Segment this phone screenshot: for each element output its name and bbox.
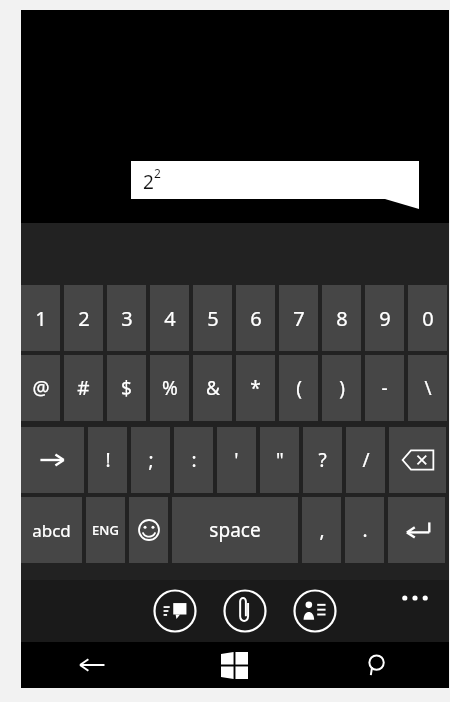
staticText: & [206,375,220,401]
staticText: 5 [207,305,219,332]
staticText: 1 [35,305,47,332]
staticText: " [276,447,284,473]
button[interactable]: , [302,497,341,563]
staticText: * [250,375,261,401]
button[interactable]: 3 [107,285,146,351]
staticText: 8 [336,305,348,332]
staticText: : [191,447,197,473]
button[interactable]: Emoji [129,497,168,563]
button[interactable]: ENG [86,497,125,563]
button[interactable]: ! [88,427,127,493]
button[interactable]: 9 [365,285,404,351]
button[interactable]: More options [393,586,437,610]
button[interactable]: . [345,497,384,563]
button[interactable]: abcd [21,497,82,563]
button[interactable]: Send message [153,589,197,633]
button[interactable]: Search [306,642,449,688]
button[interactable]: 0 [408,285,447,351]
button[interactable]: * [236,355,275,421]
staticText: / [362,447,370,473]
staticText: ENG [92,521,119,539]
staticText: 3 [121,305,133,332]
button[interactable]: space [172,497,298,563]
button[interactable]: ? [303,427,342,493]
button[interactable]: Start [163,642,306,688]
staticText: ? [318,447,327,473]
button[interactable]: Enter [388,497,445,563]
staticText: 2 [78,305,90,332]
staticText: - [381,375,388,401]
button[interactable]: / [346,427,385,493]
button[interactable]: % [150,355,189,421]
staticText: $ [121,375,132,401]
staticText: 7 [293,305,305,332]
staticText: # [77,375,90,401]
staticText: 2 [154,165,161,181]
button[interactable]: ( [279,355,318,421]
staticText: 2 [143,169,154,195]
button[interactable]: ; [131,427,170,493]
staticText: 9 [379,305,391,332]
button[interactable]: " [260,427,299,493]
staticText: @ [32,375,50,401]
staticText: 0 [422,305,434,332]
button[interactable]: ' [217,427,256,493]
button[interactable]: Attach [223,589,267,633]
button[interactable]: 6 [236,285,275,351]
button[interactable]: @ [21,355,60,421]
staticText: ' [234,447,239,473]
staticText: . [362,517,368,543]
button[interactable]: 7 [279,285,318,351]
button[interactable]: $ [107,355,146,421]
button[interactable]: 1 [21,285,60,351]
button[interactable]: More symbols [21,427,84,493]
button[interactable]: Contacts [293,589,337,633]
button[interactable]: - [365,355,404,421]
button[interactable]: 8 [322,285,361,351]
button[interactable]: 5 [193,285,232,351]
staticText: \ [424,375,432,401]
button[interactable]: 4 [150,285,189,351]
button[interactable]: : [174,427,213,493]
staticText: , [319,517,325,543]
staticText: ! [105,447,111,473]
staticText: space [209,517,261,543]
staticText: 6 [250,305,262,332]
staticText: ) [339,375,345,401]
button[interactable]: \ [408,355,447,421]
button[interactable]: Backspace [389,427,446,493]
button[interactable]: 2 [64,285,103,351]
staticText: abcd [32,519,71,542]
staticText: % [162,375,178,401]
button[interactable]: & [193,355,232,421]
staticText: ; [148,447,154,473]
staticText: ( [296,375,302,401]
button[interactable]: ) [322,355,361,421]
button[interactable]: # [64,355,103,421]
staticText: 4 [164,305,176,332]
button[interactable]: Back [21,642,163,688]
